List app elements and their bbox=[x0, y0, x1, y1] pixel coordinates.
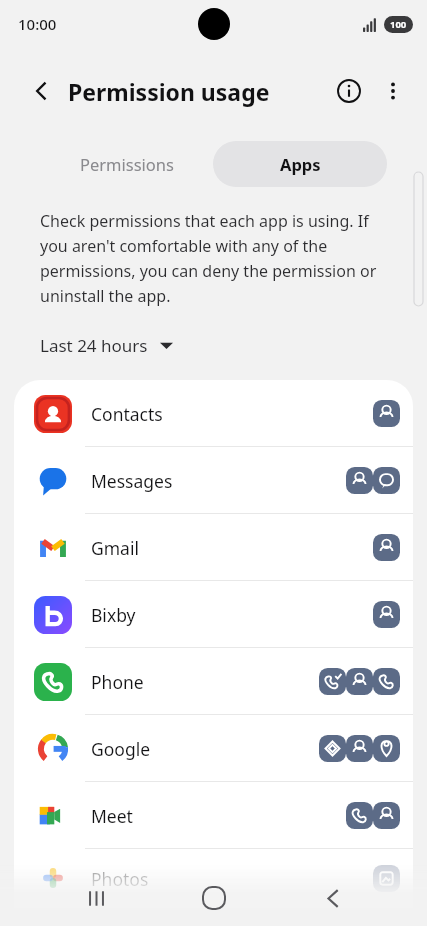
staticText: 10:00 bbox=[18, 14, 57, 34]
button[interactable]: Back bbox=[22, 71, 62, 111]
staticText: Gmail bbox=[91, 536, 139, 560]
button[interactable]: Google bbox=[14, 715, 413, 782]
staticText: Photos bbox=[91, 867, 149, 891]
button[interactable]: Photos bbox=[14, 849, 413, 909]
staticText: Permissions bbox=[80, 153, 174, 175]
button[interactable]: Last 24 hours bbox=[40, 334, 173, 357]
button[interactable]: Apps bbox=[213, 141, 387, 187]
staticText: Last 24 hours bbox=[40, 334, 148, 357]
button[interactable]: Phone bbox=[14, 648, 413, 715]
button[interactable]: Back bbox=[311, 876, 355, 920]
button[interactable]: Home bbox=[191, 875, 237, 921]
staticText: Phone bbox=[91, 670, 144, 694]
button[interactable]: Permissions bbox=[40, 141, 214, 187]
button[interactable]: Meet bbox=[14, 782, 413, 849]
staticText: Contacts bbox=[91, 402, 163, 426]
staticText: Apps bbox=[280, 153, 321, 175]
staticText: Google bbox=[91, 737, 151, 761]
staticText: Messages bbox=[91, 469, 173, 493]
staticText: Permission usage bbox=[68, 76, 270, 107]
button[interactable]: Contacts bbox=[14, 380, 413, 447]
button[interactable]: Information bbox=[327, 69, 371, 113]
button[interactable]: Bixby bbox=[14, 581, 413, 648]
button[interactable]: Messages bbox=[14, 447, 413, 514]
button[interactable]: Recent apps bbox=[74, 876, 118, 920]
staticText: Check permissions that each app is using… bbox=[40, 210, 383, 306]
staticText: Meet bbox=[91, 804, 133, 828]
staticText: Bixby bbox=[91, 603, 136, 627]
button[interactable]: Gmail bbox=[14, 514, 413, 581]
button[interactable]: More options bbox=[371, 69, 415, 113]
staticText: 100 bbox=[390, 18, 407, 31]
